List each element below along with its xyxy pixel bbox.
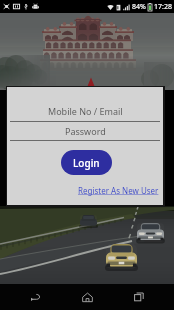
staticText: 17:28 — [154, 2, 172, 12]
button[interactable]: Home — [70, 284, 104, 310]
staticText: 84% — [132, 2, 146, 12]
staticText: Register As New User — [78, 185, 159, 196]
button[interactable]: Mobile No / Email — [7, 101, 163, 120]
button[interactable]: Password — [7, 122, 163, 139]
staticText: Login — [73, 156, 100, 170]
staticText: Mobile No / Email — [48, 105, 123, 117]
staticText: Password — [65, 125, 106, 137]
button[interactable]: Login — [61, 150, 112, 175]
button[interactable]: Register As New User — [78, 184, 163, 197]
button[interactable]: Back — [18, 284, 52, 310]
button[interactable]: Recent apps — [122, 284, 156, 310]
